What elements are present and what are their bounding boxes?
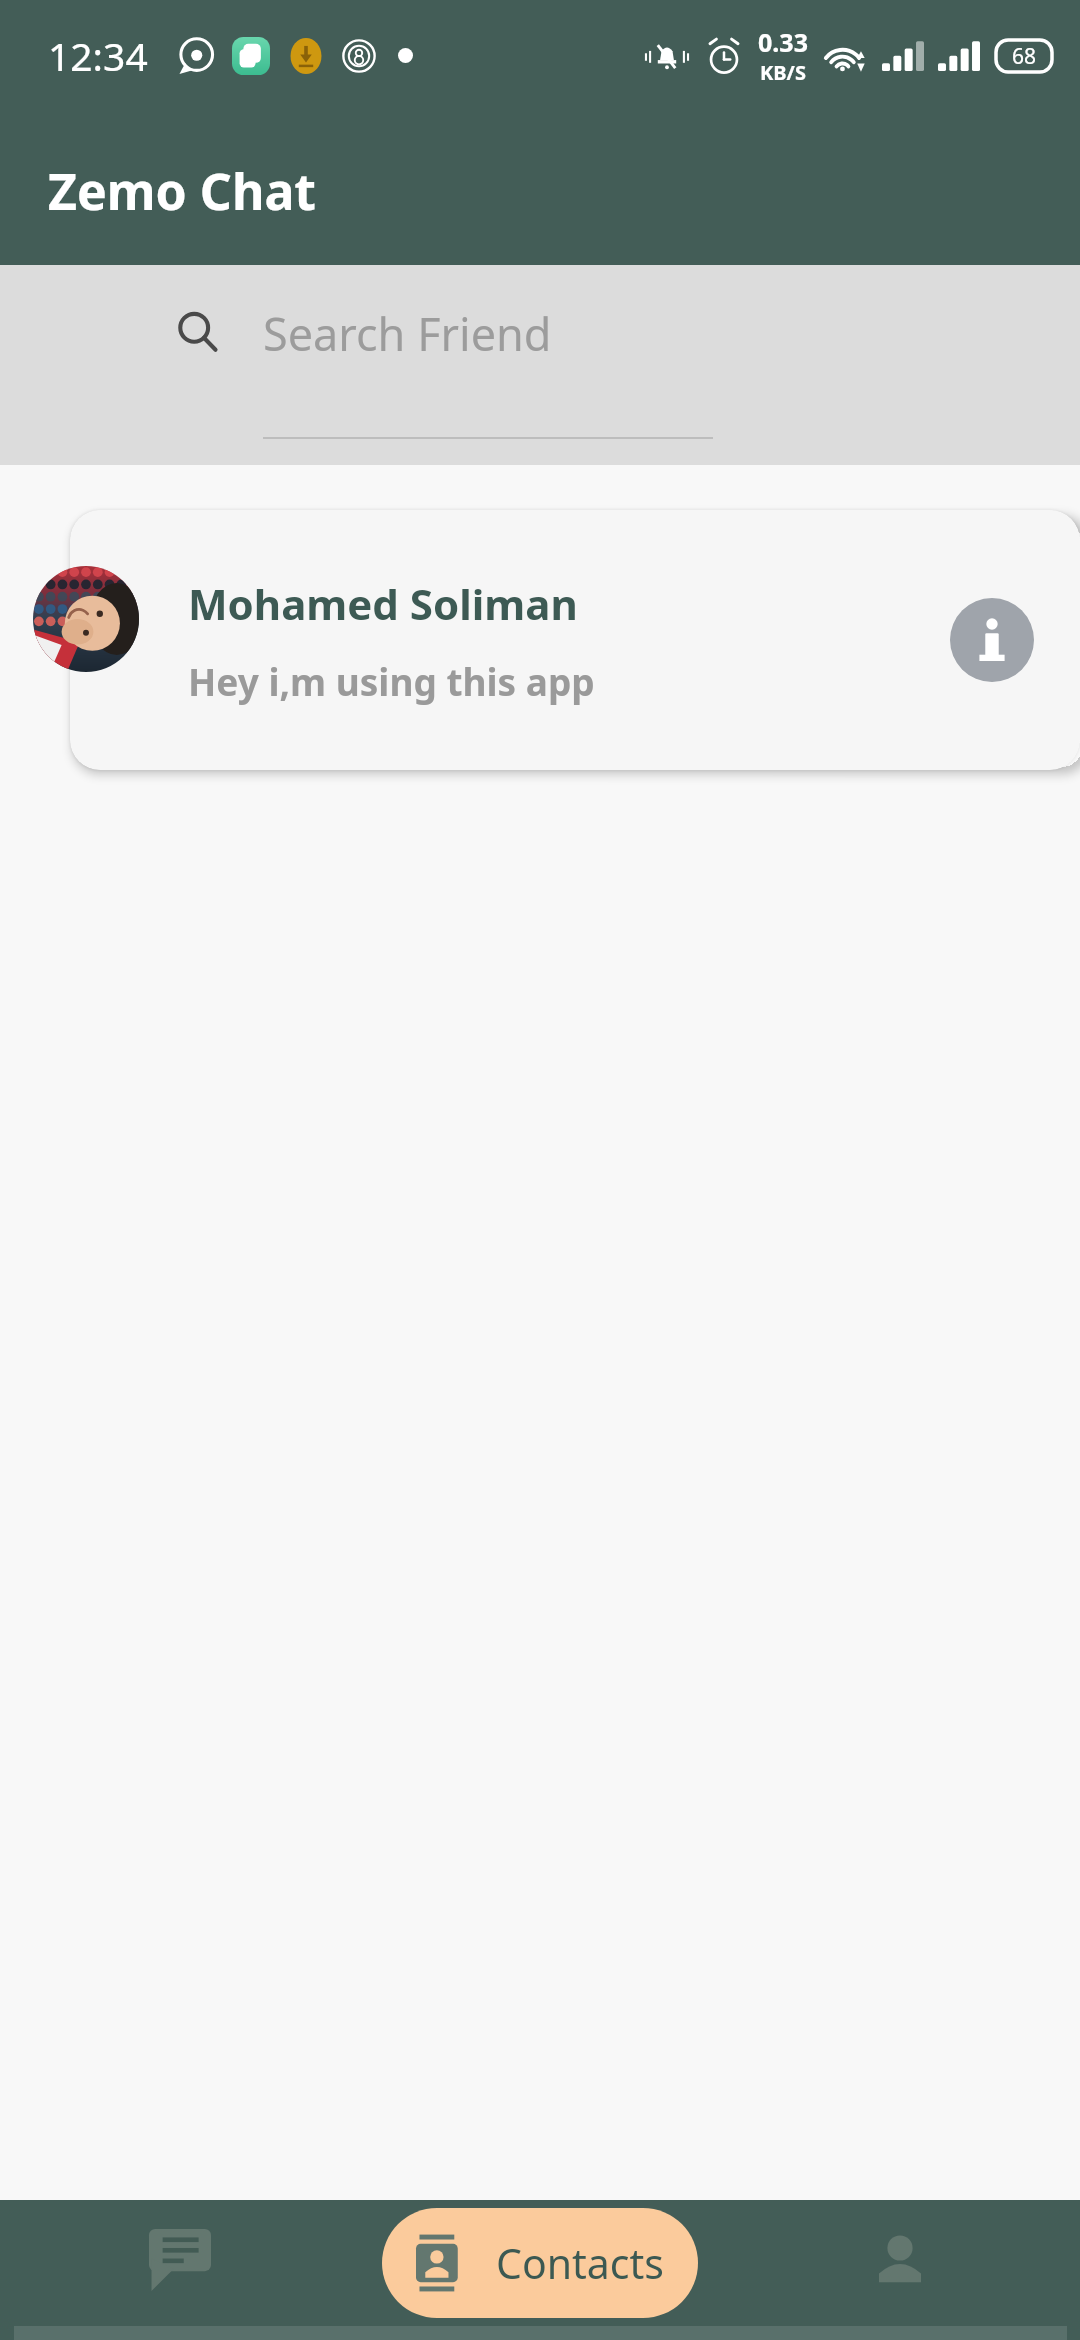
button[interactable]: Mohamed Soliman [70,510,1080,770]
staticText: Mohamed Soliman [188,575,578,632]
staticText: 0.33 [758,25,808,59]
staticText: KB/S [760,59,806,86]
button[interactable]: Chats [0,2200,360,2340]
staticText: Zemo Chat [48,157,317,225]
staticText: 12:34 [48,29,148,82]
staticText: Contacts [496,2235,664,2291]
staticText: 68 [1012,42,1037,71]
button[interactable]: Profile [720,2200,1080,2340]
staticText: Search Friend [263,303,552,364]
button[interactable]: Contact info [950,598,1034,682]
button[interactable]: Contacts [382,2208,698,2318]
button[interactable]: Search Friend [175,303,1080,364]
button[interactable]: Mohamed Soliman profile photo [33,566,139,672]
staticText: Hey i,m using this app [188,656,595,706]
